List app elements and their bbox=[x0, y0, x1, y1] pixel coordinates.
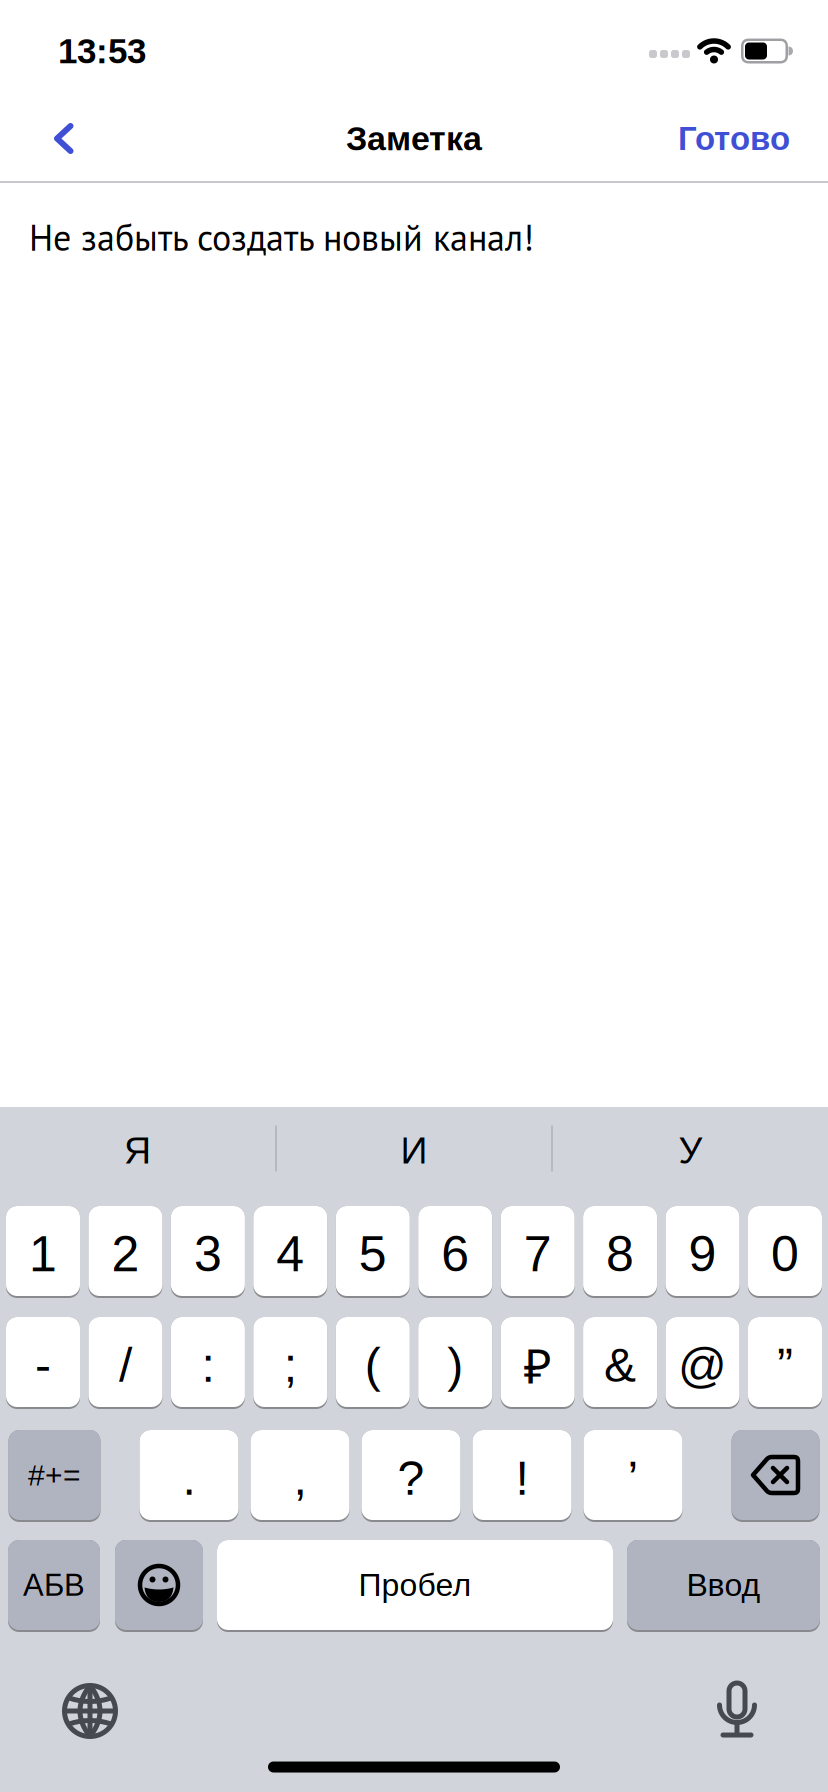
staticText: Пробел bbox=[358, 1567, 471, 1603]
staticText: Ввод bbox=[686, 1567, 760, 1603]
button[interactable]: 9 bbox=[665, 1206, 739, 1298]
staticText: ; bbox=[284, 1338, 297, 1392]
button[interactable]: ’ bbox=[583, 1430, 682, 1522]
staticText: АБВ bbox=[23, 1568, 85, 1602]
button[interactable]: Back bbox=[0, 118, 95, 153]
button[interactable]: . bbox=[139, 1430, 238, 1522]
staticText: 9 bbox=[688, 1226, 716, 1282]
button[interactable]: 0 bbox=[748, 1206, 822, 1298]
button[interactable]: Dictation bbox=[718, 1680, 756, 1740]
staticText: Я bbox=[124, 1130, 151, 1171]
button[interactable]: ) bbox=[418, 1317, 492, 1409]
button[interactable]: ! bbox=[472, 1430, 571, 1522]
button[interactable]: Ввод bbox=[627, 1540, 820, 1632]
button[interactable]: #+= bbox=[8, 1430, 100, 1522]
button[interactable]: Я bbox=[0, 1107, 275, 1206]
button[interactable]: , bbox=[250, 1430, 349, 1522]
button[interactable]: Delete bbox=[731, 1430, 819, 1522]
staticText: ? bbox=[397, 1451, 424, 1505]
button[interactable]: @ bbox=[665, 1317, 739, 1409]
staticText: ₽ bbox=[524, 1332, 552, 1398]
staticText: 1 bbox=[29, 1226, 57, 1282]
button[interactable]: У bbox=[553, 1107, 828, 1206]
button[interactable]: ? bbox=[361, 1430, 460, 1522]
staticText: 6 bbox=[441, 1226, 469, 1282]
staticText: У bbox=[678, 1130, 702, 1171]
staticText: 13:53 bbox=[58, 31, 146, 70]
staticText: #+= bbox=[28, 1458, 81, 1492]
button[interactable]: 2 bbox=[88, 1206, 162, 1298]
staticText: ) bbox=[447, 1338, 463, 1392]
staticText: - bbox=[35, 1338, 51, 1392]
staticText: 8 bbox=[606, 1226, 634, 1282]
button[interactable]: Готово bbox=[678, 117, 828, 154]
button[interactable]: ( bbox=[336, 1317, 410, 1409]
staticText: 7 bbox=[524, 1226, 552, 1282]
staticText: & bbox=[604, 1338, 636, 1392]
staticText: @ bbox=[678, 1338, 727, 1392]
staticText: И bbox=[400, 1130, 427, 1171]
button[interactable]: : bbox=[171, 1317, 245, 1409]
staticText: ” bbox=[777, 1338, 793, 1392]
staticText: ! bbox=[515, 1451, 528, 1505]
staticText: / bbox=[119, 1338, 132, 1392]
button[interactable]: Пробел bbox=[217, 1540, 613, 1632]
button[interactable]: Next keyboard bbox=[62, 1683, 118, 1739]
staticText: 2 bbox=[111, 1226, 139, 1282]
button[interactable]: АБВ bbox=[8, 1540, 100, 1632]
button[interactable]: / bbox=[88, 1317, 162, 1409]
button[interactable]: 1 bbox=[6, 1206, 80, 1298]
button[interactable]: - bbox=[6, 1317, 80, 1409]
button[interactable]: ” bbox=[748, 1317, 822, 1409]
staticText: 5 bbox=[359, 1226, 387, 1282]
button[interactable]: ; bbox=[253, 1317, 327, 1409]
staticText: Не забыть создать новый канал! bbox=[29, 214, 534, 261]
button[interactable]: И bbox=[277, 1107, 551, 1206]
button[interactable]: & bbox=[583, 1317, 657, 1409]
staticText: 0 bbox=[771, 1226, 799, 1282]
button[interactable]: 6 bbox=[418, 1206, 492, 1298]
button[interactable]: 7 bbox=[501, 1206, 575, 1298]
staticText: ’ bbox=[627, 1451, 638, 1505]
staticText: Заметка bbox=[346, 119, 482, 157]
staticText: . bbox=[182, 1451, 195, 1505]
staticText: : bbox=[201, 1338, 214, 1392]
button[interactable]: 3 bbox=[171, 1206, 245, 1298]
staticText: 4 bbox=[276, 1226, 304, 1282]
staticText: , bbox=[293, 1451, 306, 1505]
staticText: 3 bbox=[194, 1226, 222, 1282]
button[interactable]: 5 bbox=[336, 1206, 410, 1298]
button[interactable]: ₽ bbox=[501, 1317, 575, 1409]
button[interactable]: 4 bbox=[253, 1206, 327, 1298]
staticText: Готово bbox=[678, 120, 790, 157]
button[interactable]: 8 bbox=[583, 1206, 657, 1298]
staticText: ( bbox=[365, 1338, 381, 1392]
button[interactable]: Emoji bbox=[115, 1540, 203, 1632]
